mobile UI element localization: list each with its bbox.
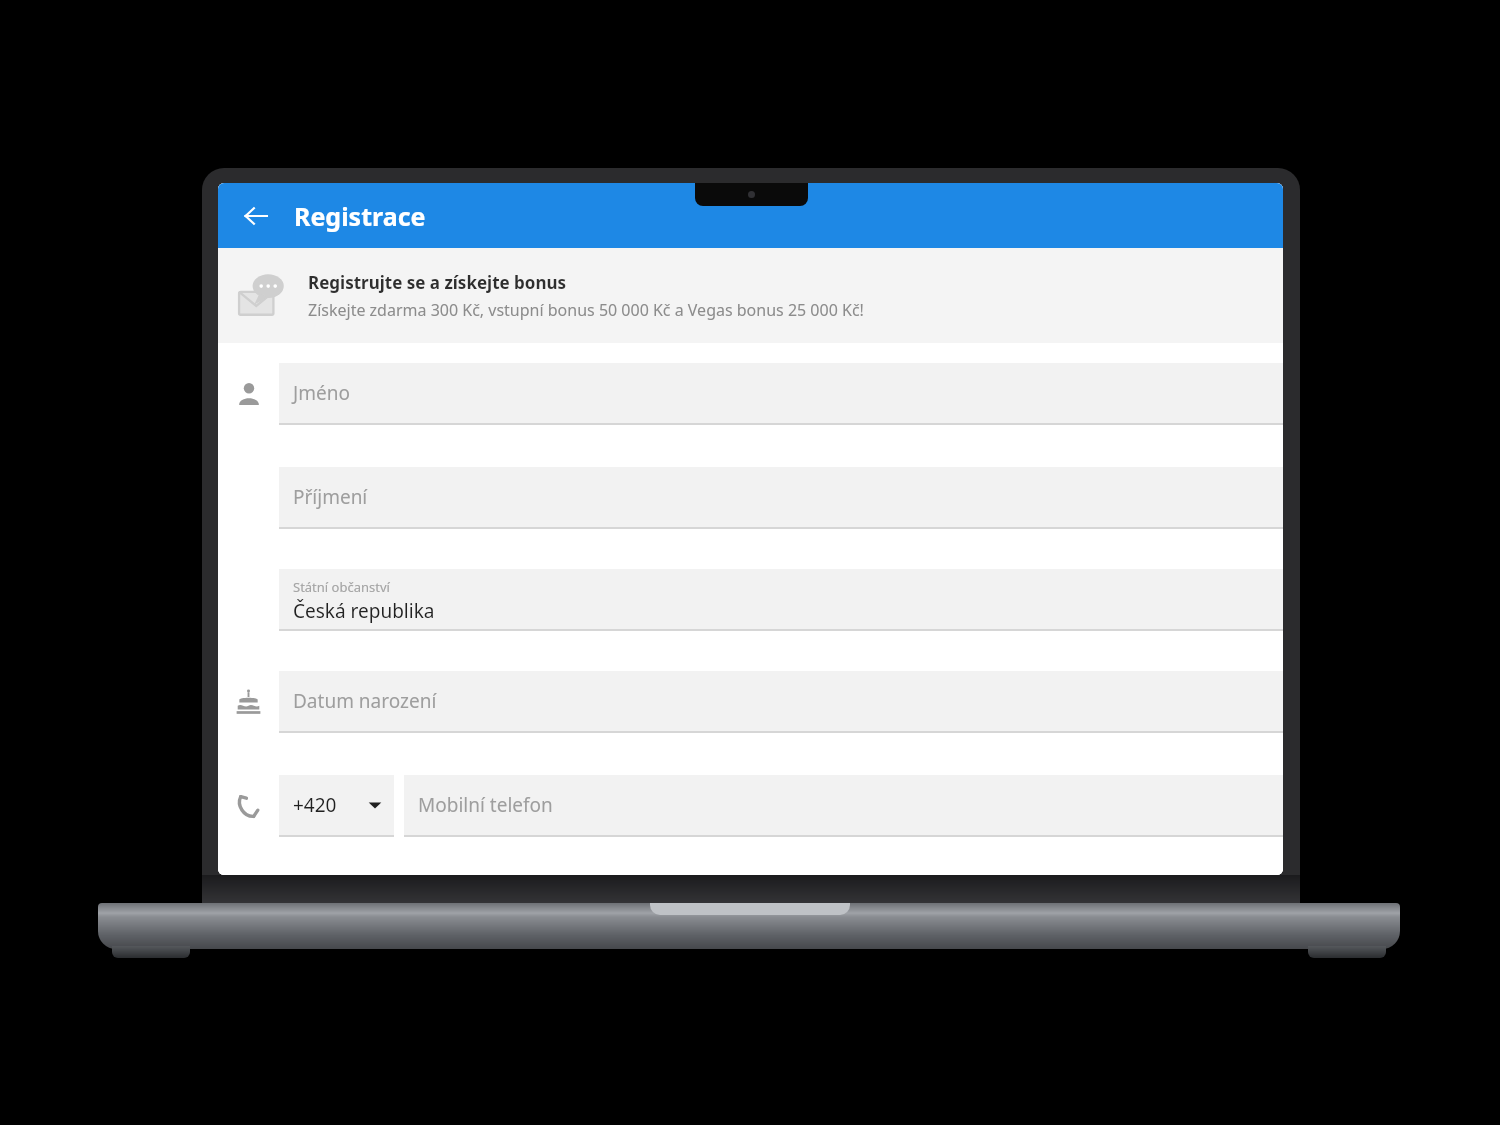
staticText: Registrujte se a získejte bonus [308,271,567,294]
button[interactable]: Státní občanství [279,569,1283,631]
staticText: Mobilní telefon [418,792,553,818]
staticText: Datum narození [293,688,437,714]
button[interactable]: Datum narození [279,671,1283,733]
button[interactable]: Registrujte se a získejte bonus [218,248,1283,343]
button[interactable]: Back [232,192,280,240]
staticText: Získejte zdarma 300 Kč, vstupní bonus 50… [308,299,864,321]
staticText: Česká republika [293,598,435,624]
staticText: Registrace [294,199,426,233]
staticText: Jméno [293,380,350,406]
staticText: Příjmení [293,484,368,510]
button[interactable]: Příjmení [279,467,1283,529]
staticText: Státní občanství [293,578,390,596]
staticText: +420 [293,792,337,818]
button[interactable]: +420 [279,775,394,837]
button[interactable]: Jméno [279,363,1283,425]
button[interactable]: Mobilní telefon [404,775,1283,837]
